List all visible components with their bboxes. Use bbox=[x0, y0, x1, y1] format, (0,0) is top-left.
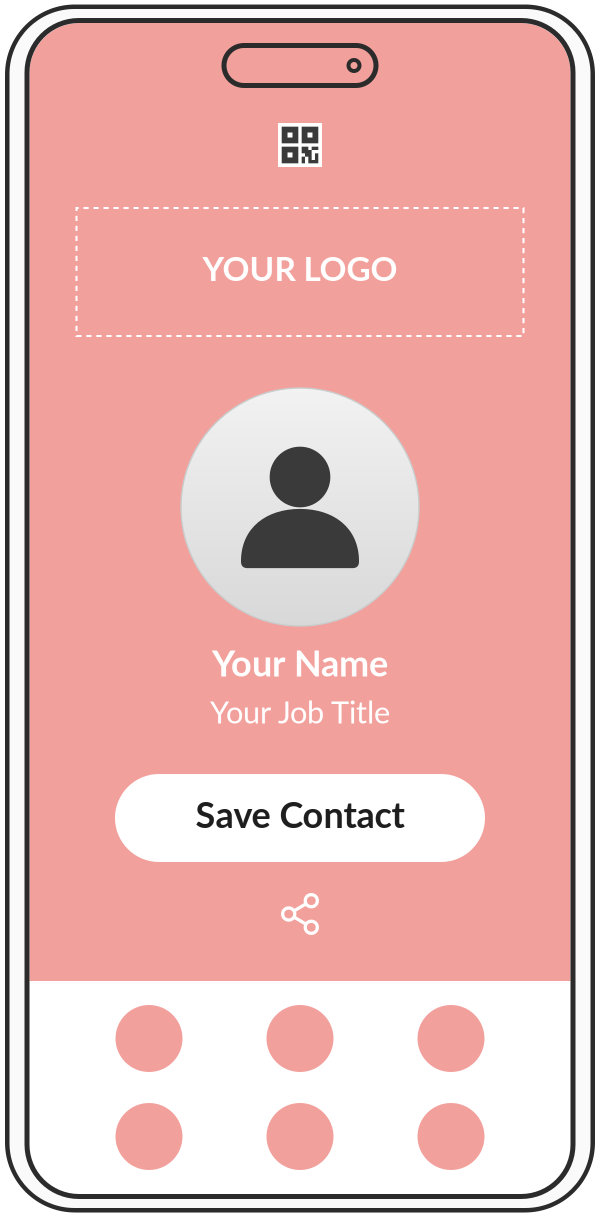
staticText: Your Job Title bbox=[210, 693, 390, 730]
staticText: Save Contact bbox=[195, 792, 404, 836]
staticText: Your Name bbox=[212, 641, 388, 684]
staticText: YOUR LOGO bbox=[202, 248, 397, 288]
button[interactable]: Share bbox=[281, 893, 319, 935]
button[interactable]: Save Contact bbox=[115, 774, 485, 862]
